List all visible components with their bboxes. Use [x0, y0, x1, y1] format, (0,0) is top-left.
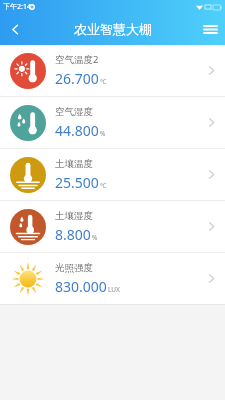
- staticText: 830.000: [55, 277, 107, 296]
- staticText: 25.500: [55, 173, 99, 192]
- button[interactable]: 土壤湿度: [0, 201, 225, 252]
- staticText: 44.800: [55, 121, 99, 140]
- staticText: 农业智慧大棚: [74, 21, 152, 37]
- button[interactable]: Back: [0, 14, 30, 44]
- button[interactable]: 光照强度: [0, 253, 225, 304]
- button[interactable]: 空气湿度: [0, 97, 225, 148]
- staticText: %: [100, 129, 106, 138]
- staticText: ℃: [100, 77, 107, 86]
- staticText: 下午2:14: [3, 2, 31, 12]
- staticText: 空气湿度: [55, 106, 93, 118]
- staticText: 空气温度2: [55, 53, 99, 66]
- staticText: ℃: [100, 181, 107, 190]
- button[interactable]: 土壤温度: [0, 149, 225, 200]
- staticText: 土壤湿度: [55, 210, 93, 222]
- staticText: 26.700: [55, 69, 99, 88]
- button[interactable]: Menu: [195, 14, 225, 44]
- staticText: %: [92, 233, 98, 242]
- button[interactable]: 空气温度2: [0, 45, 225, 96]
- staticText: 8.800: [55, 225, 91, 244]
- staticText: LUX: [108, 285, 120, 294]
- staticText: 光照强度: [55, 262, 93, 274]
- staticText: 土壤温度: [55, 158, 93, 170]
